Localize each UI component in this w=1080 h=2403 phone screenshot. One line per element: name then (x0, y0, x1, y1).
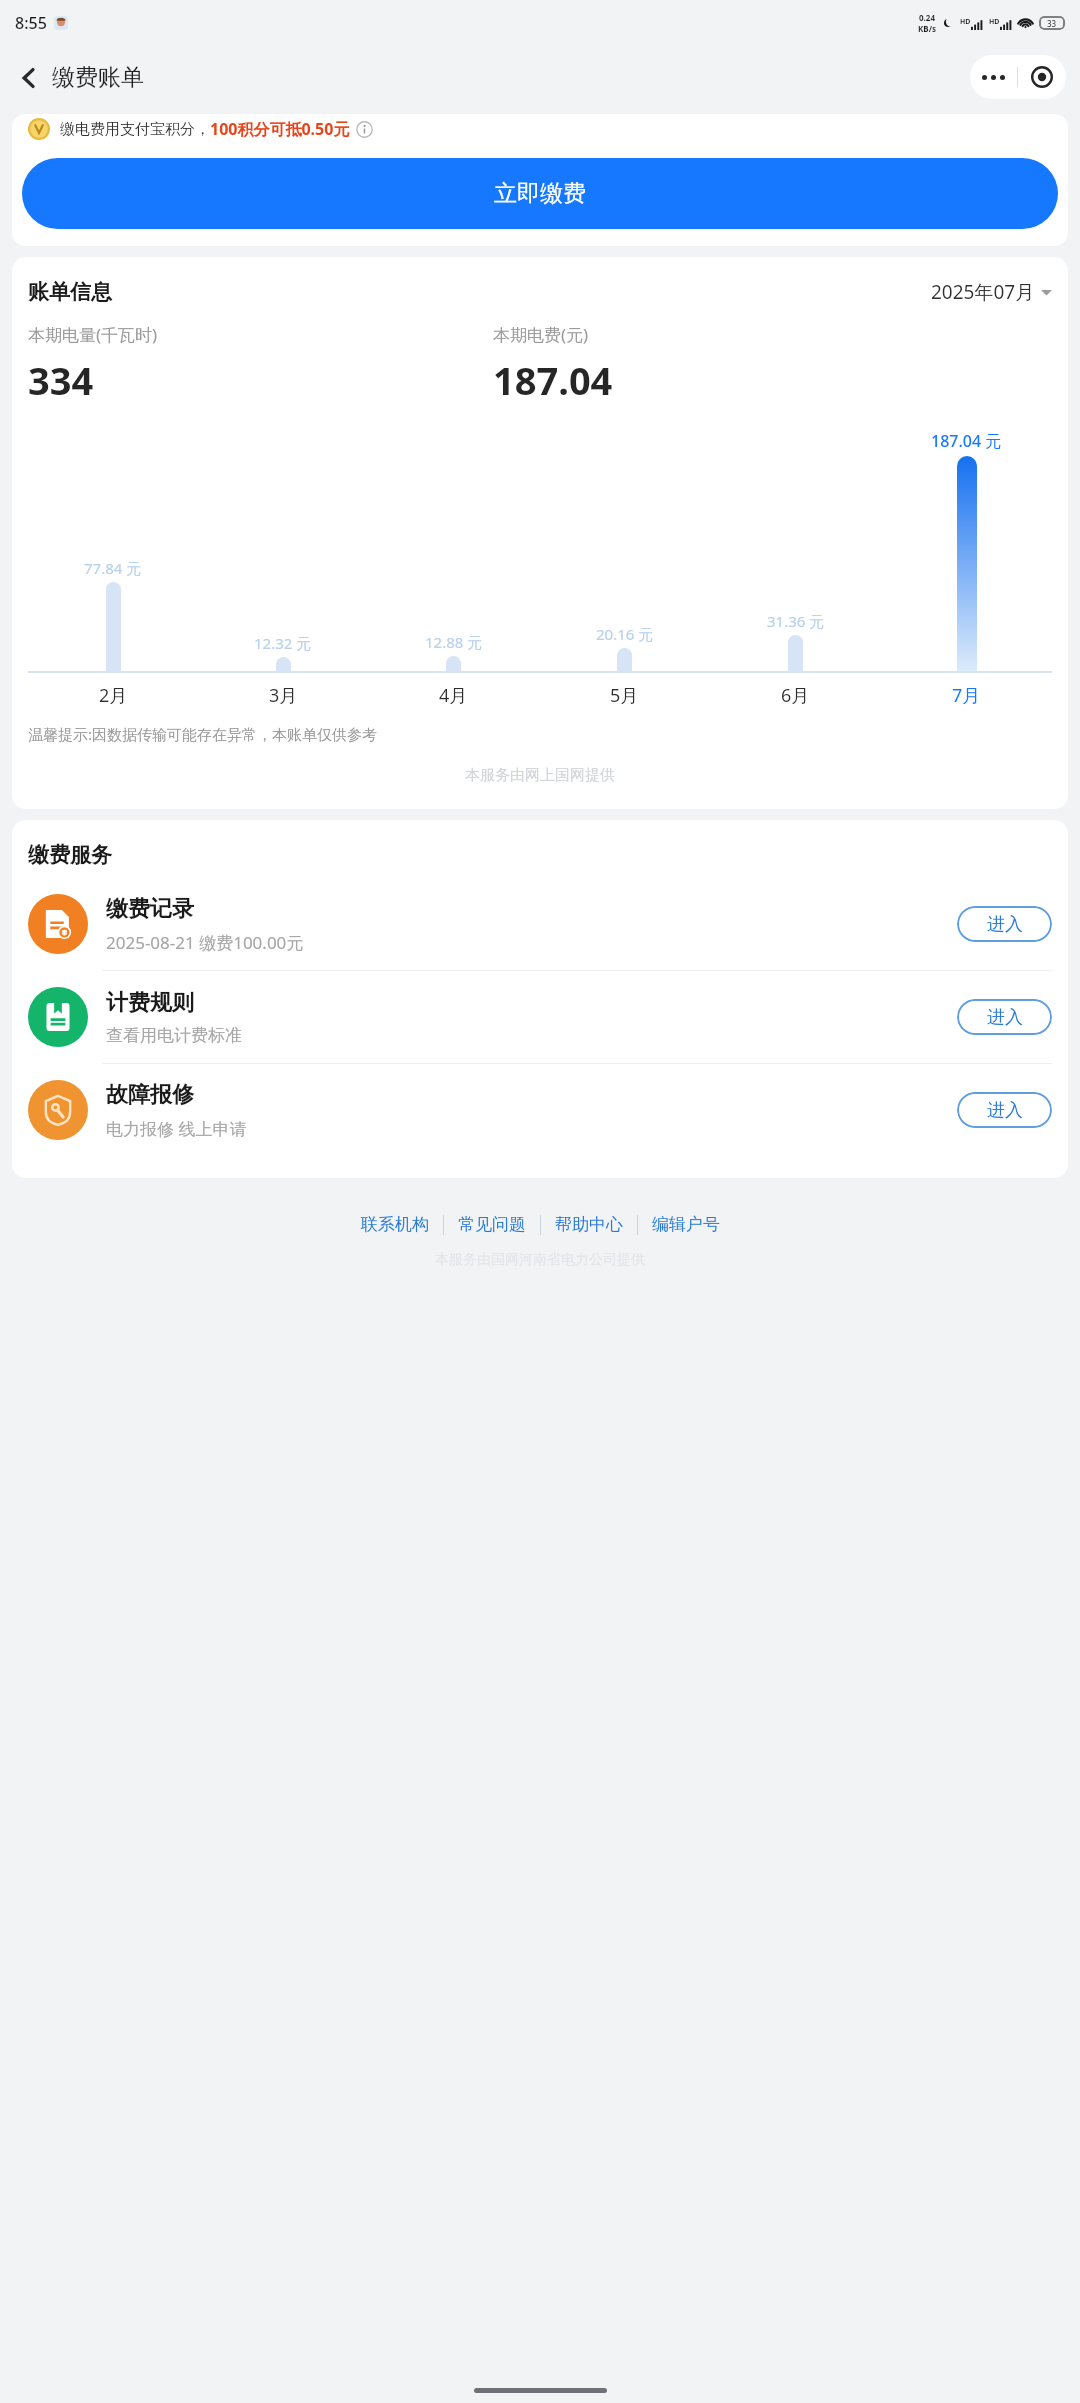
button[interactable]: 缴费记录 (12, 878, 1068, 970)
button[interactable]: Close (1018, 55, 1066, 99)
staticText: 33 (1047, 18, 1057, 29)
staticText: 6月 (781, 683, 810, 708)
button[interactable]: 帮助中心 (541, 1208, 637, 1241)
button[interactable]: 进入 (957, 906, 1052, 942)
button[interactable]: 进入 (957, 999, 1052, 1035)
staticText: 187.04 (493, 354, 613, 406)
staticText: 0.24 (919, 12, 935, 23)
staticText: 20.16 元 (596, 624, 654, 644)
staticText: 100积分可抵0.50元 (210, 118, 350, 140)
staticText: 缴费记录 (106, 895, 194, 923)
button[interactable]: 编辑户号 (638, 1208, 734, 1241)
staticText: 温馨提示:因数据传输可能存在异常，本账单仅供参考 (28, 724, 378, 744)
staticText: 常见问题 (458, 1214, 526, 1235)
staticText: 2025-08-21 缴费100.00元 (106, 931, 304, 954)
staticText: 本期电费(元) (493, 323, 589, 346)
staticText: 8:55 (15, 12, 47, 34)
button[interactable]: 2025年07月 (931, 279, 1052, 305)
staticText: 2025年07月 (931, 279, 1035, 305)
staticText: KB/s (918, 23, 936, 34)
staticText: 计费规则 (106, 989, 194, 1017)
staticText: 编辑户号 (652, 1214, 720, 1235)
staticText: 本服务由网上国网提供 (28, 766, 1052, 785)
staticText: HD (989, 17, 1000, 27)
staticText: 查看用电计费标准 (106, 1025, 242, 1046)
staticText: 立即缴费 (494, 179, 586, 208)
button[interactable]: 立即缴费 (22, 158, 1058, 229)
button[interactable]: More options (970, 55, 1017, 99)
staticText: 本期电量(千瓦时) (28, 323, 158, 346)
staticText: 缴费账单 (52, 63, 144, 92)
staticText: 4月 (439, 683, 468, 708)
staticText: 缴电费用支付宝积分， (60, 120, 210, 139)
staticText: 31.36 元 (767, 611, 825, 631)
staticText: 12.32 元 (254, 633, 312, 653)
button[interactable]: Back (10, 57, 152, 98)
staticText: 进入 (987, 1006, 1023, 1029)
button[interactable]: 故障报修 (12, 1064, 1068, 1156)
staticText: 账单信息 (28, 279, 112, 305)
staticText: 故障报修 (106, 1081, 194, 1109)
staticText: 77.84 元 (84, 558, 142, 578)
staticText: 3月 (269, 683, 298, 708)
staticText: 7月 (952, 683, 981, 708)
staticText: 帮助中心 (555, 1214, 623, 1235)
staticText: 2月 (99, 683, 128, 708)
button[interactable]: 计费规则 (12, 971, 1068, 1063)
button[interactable]: 常见问题 (444, 1208, 540, 1241)
staticText: 187.04 元 (931, 430, 1002, 452)
button[interactable]: 联系机构 (347, 1208, 443, 1241)
staticText: 进入 (987, 913, 1023, 936)
staticText: 进入 (987, 1099, 1023, 1122)
staticText: 334 (28, 354, 94, 406)
staticText: 12.88 元 (425, 632, 483, 652)
staticText: HD (960, 17, 971, 27)
button[interactable]: 进入 (957, 1092, 1052, 1128)
staticText: 联系机构 (361, 1214, 429, 1235)
staticText: 缴费服务 (28, 842, 112, 868)
staticText: 电力报修 线上申请 (106, 1117, 247, 1140)
staticText: 5月 (610, 683, 639, 708)
other: Info (356, 121, 373, 138)
